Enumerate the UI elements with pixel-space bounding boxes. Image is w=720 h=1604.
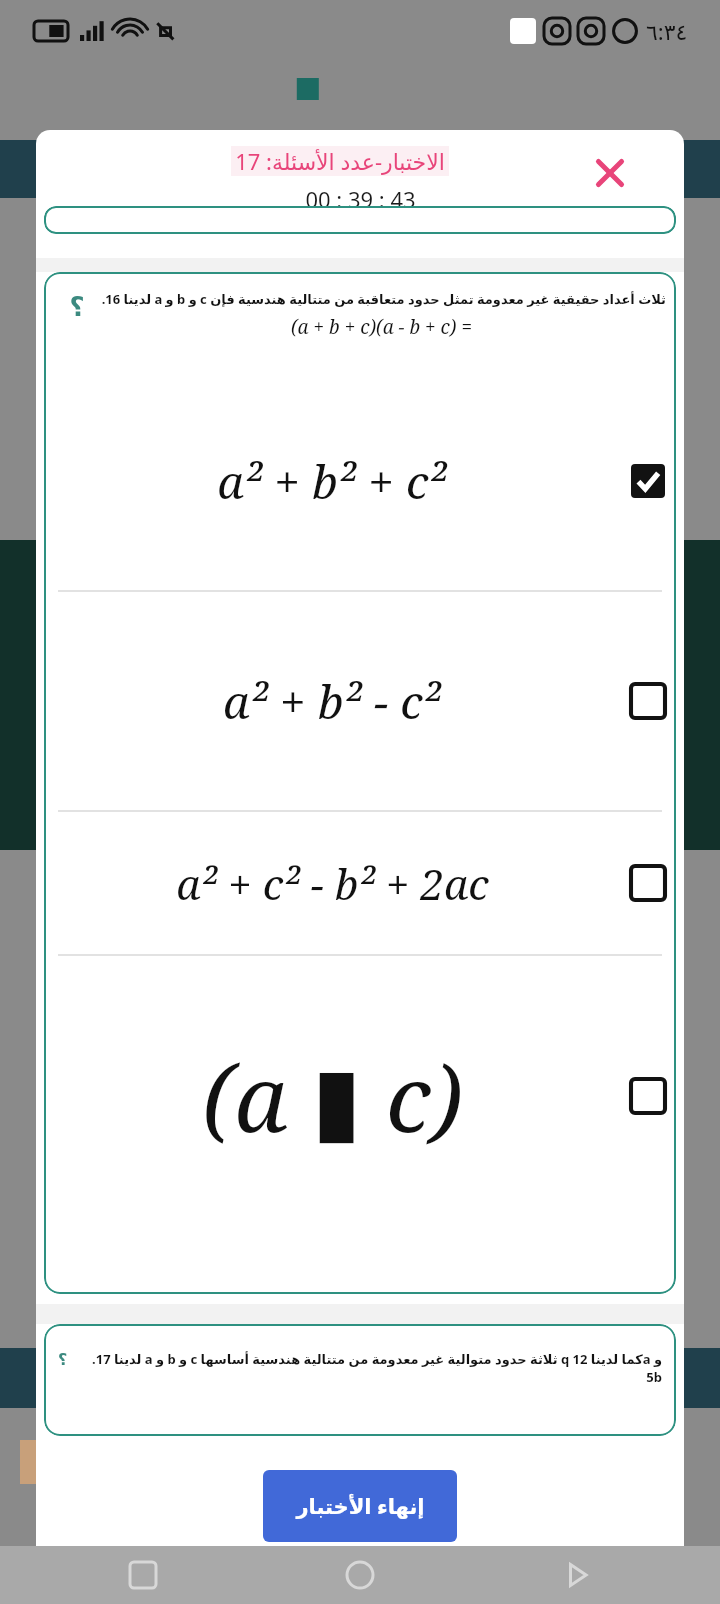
staticText: 00: [640, 880, 670, 915]
staticText: a² + c² − b² + 2ac: [176, 855, 489, 912]
button[interactable]: إنهاء الأختبار: [263, 1470, 457, 1542]
staticText: (a ▮ c): [202, 1034, 463, 1159]
button[interactable]: إغلاق: [581, 144, 639, 202]
staticText: a² + b² − c²: [223, 670, 441, 733]
staticText: 00 : 39 : 43: [305, 184, 416, 214]
staticText: ٦:٣٤: [646, 16, 688, 46]
staticText: a² + b² + c²: [217, 450, 447, 513]
staticText: الاختبار-عدد الأسئلة: 17: [235, 146, 445, 176]
button[interactable]: a² + b² + c²: [44, 372, 676, 590]
button[interactable]: (a ▮ c): [44, 956, 676, 1236]
button[interactable]: Home: [337, 1552, 383, 1598]
button[interactable]: a² + c² − b² + 2ac: [44, 812, 676, 954]
staticText: ‎.17 لدينا a و b و c ثلاثة حدود متوالية …: [92, 1350, 662, 1386]
staticText: (a + b + c)(a − b + c) =: [291, 314, 472, 340]
staticText: ‎.16 لدينا a و b و c ثلاث أعداد حقيقية غ…: [101, 290, 666, 308]
button[interactable]: a² + b² − c²: [44, 592, 676, 810]
staticText: إنهاء الأختبار: [296, 1492, 425, 1521]
button[interactable]: Recent apps: [120, 1552, 166, 1598]
staticText: ؟: [58, 1350, 68, 1369]
button[interactable]: Back: [554, 1552, 600, 1598]
staticText: ؟: [69, 292, 85, 322]
